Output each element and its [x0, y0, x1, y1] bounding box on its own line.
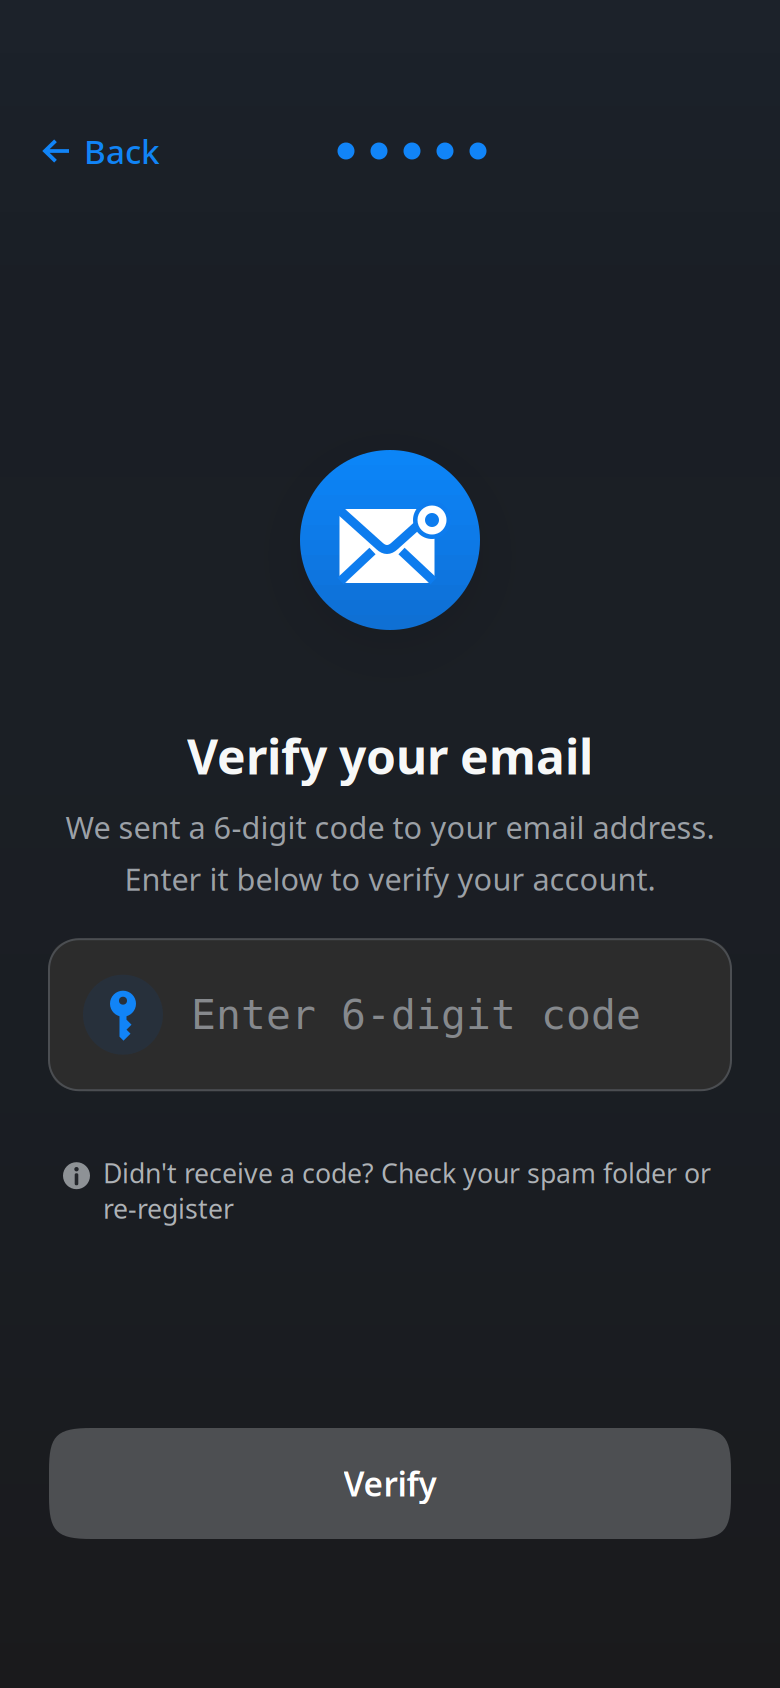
staticText: Enter it below to verify your account.: [124, 858, 655, 899]
staticText: We sent a 6-digit code to your email add…: [65, 807, 714, 847]
staticText: Didn't receive a code? Check your spam f…: [103, 1155, 711, 1226]
button[interactable]: Verify: [49, 1428, 731, 1539]
staticText: Enter 6-digit code: [191, 991, 641, 1038]
staticText: Verify: [343, 1461, 436, 1506]
button[interactable]: Back: [35, 117, 168, 185]
staticText: Verify your email: [187, 724, 593, 788]
staticText: Back: [84, 129, 160, 173]
